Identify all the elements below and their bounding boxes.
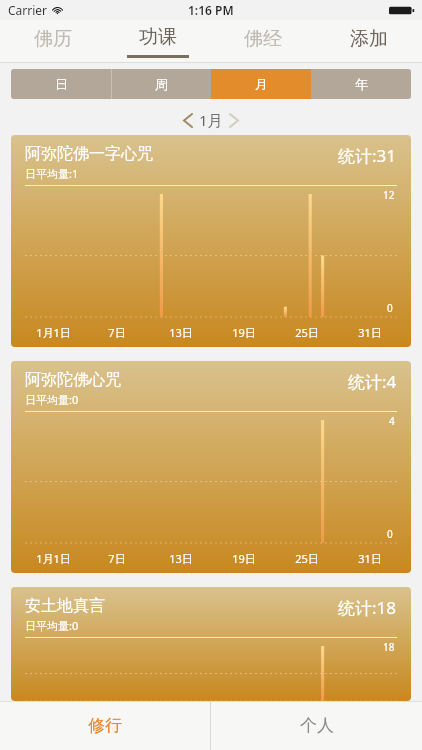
staticText: 个人 [300,715,334,736]
staticText: 7日 [108,325,126,340]
button[interactable]: 阿弥陀佛一字心咒 [11,135,411,347]
staticText: 年 [355,76,368,92]
staticText: 0 [387,301,393,315]
staticText: 统计:31 [338,144,397,167]
button[interactable]: 周 [111,69,211,99]
button[interactable]: 添加 [316,20,422,63]
staticText: 31日 [358,325,382,340]
staticText: 功课 [139,25,177,49]
staticText: 佛历 [34,27,72,51]
staticText: 1月 [199,110,223,130]
button[interactable]: 月 [211,69,311,99]
button[interactable]: Previous month [177,109,199,131]
staticText: 13日 [169,325,193,340]
staticText: 日 [55,76,68,92]
staticText: 19日 [232,325,256,340]
staticText: 4 [389,414,395,428]
staticText: 日平均量:1 [25,166,79,181]
staticText: 月 [255,76,268,92]
staticText: 7日 [108,551,126,566]
button[interactable]: 佛经 [210,20,316,63]
staticText: 统计:4 [348,370,397,393]
staticText: 修行 [88,715,122,736]
button[interactable]: 佛历 [0,20,105,63]
staticText: 25日 [295,551,319,566]
staticText: 0 [387,527,393,541]
staticText: 1月1日 [36,325,71,340]
button[interactable]: 阿弥陀佛心咒 [11,361,411,573]
staticText: 日平均量:0 [25,392,79,407]
staticText: 阿弥陀佛一字心咒 [25,144,153,164]
button[interactable]: 年 [311,69,411,99]
staticText: 25日 [295,325,319,340]
staticText: 日平均量:0 [25,618,79,633]
staticText: 1:16 PM [188,2,234,18]
staticText: 阿弥陀佛心咒 [25,370,121,390]
button[interactable]: 安土地真言 [11,587,411,701]
staticText: 周 [155,76,168,92]
staticText: 19日 [232,551,256,566]
button[interactable]: 个人 [211,701,422,750]
staticText: 12 [383,188,395,202]
button[interactable]: 功课 [105,20,210,63]
staticText: 统计:18 [338,596,397,619]
staticText: 13日 [169,551,193,566]
button[interactable]: Next month [223,109,245,131]
staticText: Carrier [8,2,48,18]
staticText: 31日 [358,551,382,566]
button[interactable]: 修行 [0,701,210,750]
staticText: 添加 [350,27,388,51]
staticText: 安土地真言 [25,596,105,616]
staticText: 18 [383,640,395,654]
button[interactable]: 日 [11,69,111,99]
staticText: 1月1日 [36,551,71,566]
staticText: 佛经 [244,27,282,51]
